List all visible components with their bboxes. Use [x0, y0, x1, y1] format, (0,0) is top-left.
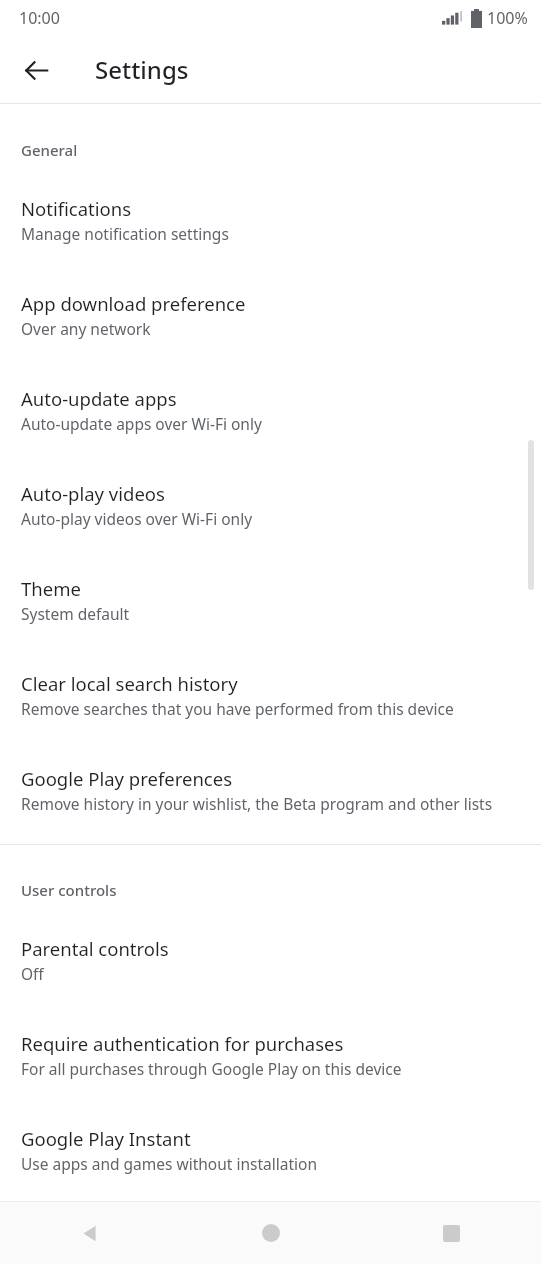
staticText: 100% [487, 7, 528, 29]
staticText: Theme [21, 576, 81, 601]
staticText: Notifications [21, 196, 132, 221]
staticText: Auto-update apps [21, 386, 177, 411]
button[interactable]: Notifications [0, 196, 541, 244]
button[interactable]: Auto-play videos [0, 481, 541, 529]
button[interactable]: Require authentication for purchases [0, 1031, 541, 1079]
button[interactable]: App download preference [0, 291, 541, 339]
button[interactable]: Recent apps [361, 1202, 541, 1264]
button[interactable]: Auto-update apps [0, 386, 541, 434]
staticText: For all purchases through Google Play on… [21, 1058, 402, 1079]
staticText: General [21, 140, 521, 160]
staticText: Auto-update apps over Wi-Fi only [21, 413, 262, 434]
staticText: Require authentication for purchases [21, 1031, 344, 1056]
button[interactable]: Back [12, 46, 60, 94]
staticText: Auto-play videos over Wi-Fi only [21, 508, 253, 529]
staticText: Remove history in your wishlist, the Bet… [21, 793, 493, 814]
button[interactable]: Parental controls [0, 936, 541, 984]
button[interactable]: Clear local search history [0, 671, 541, 719]
button[interactable]: Home [181, 1202, 361, 1264]
staticText: Google Play preferences [21, 766, 233, 791]
staticText: User controls [21, 880, 521, 900]
button[interactable]: Google Play preferences [0, 766, 541, 814]
staticText: 10:00 [19, 7, 60, 29]
staticText: Over any network [21, 318, 151, 339]
staticText: System default [21, 603, 130, 624]
button[interactable]: Google Play Instant [0, 1126, 541, 1174]
staticText: Google Play Instant [21, 1126, 191, 1151]
button[interactable]: Back [0, 1202, 181, 1264]
staticText: Use apps and games without installation [21, 1153, 317, 1174]
staticText: App download preference [21, 291, 246, 316]
button[interactable]: Theme [0, 576, 541, 624]
staticText: Manage notification settings [21, 223, 229, 244]
staticText: Clear local search history [21, 671, 238, 696]
staticText: Parental controls [21, 936, 169, 961]
staticText: Auto-play videos [21, 481, 165, 506]
staticText: Settings [95, 53, 189, 86]
staticText: Remove searches that you have performed … [21, 698, 454, 719]
staticText: Off [21, 963, 44, 984]
